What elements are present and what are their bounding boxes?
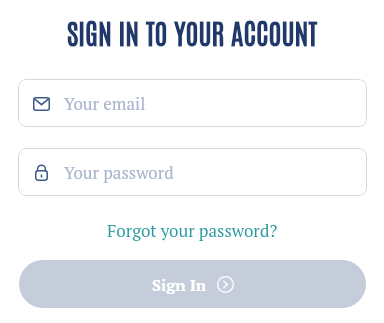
button[interactable]: Sign In: [19, 260, 366, 308]
staticText: SIGN IN TO YOUR ACCOUNT: [67, 14, 317, 50]
staticText: Sign In: [152, 274, 207, 295]
staticText: Your email: [64, 92, 146, 115]
button[interactable]: Your email: [18, 79, 367, 127]
button[interactable]: Forgot your password?: [107, 219, 278, 242]
staticText: Your password: [64, 161, 174, 184]
button[interactable]: Your password: [18, 148, 367, 196]
